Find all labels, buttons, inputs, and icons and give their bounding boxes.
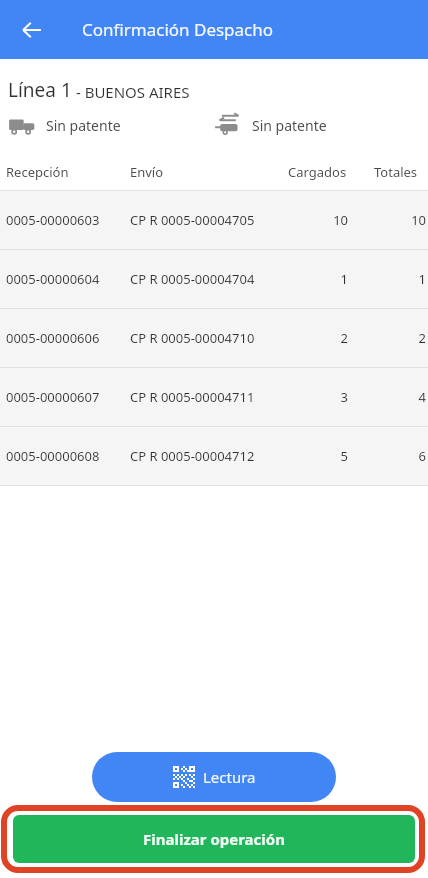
button[interactable]: Lectura: [92, 752, 336, 802]
staticText: Recepción: [6, 163, 69, 181]
button[interactable]: 0005-00000608: [0, 427, 428, 485]
staticText: 2: [288, 329, 348, 347]
staticText: - BUENOS AIRES: [72, 82, 190, 102]
staticText: CP R 0005-00004711: [130, 388, 255, 406]
staticText: Sin patente: [252, 116, 327, 135]
staticText: Envío: [130, 163, 164, 181]
staticText: 1: [374, 270, 426, 288]
staticText: 2: [374, 329, 426, 347]
staticText: 10: [374, 211, 426, 229]
staticText: 1: [288, 270, 348, 288]
staticText: Finalizar operación: [143, 829, 285, 849]
button[interactable]: Sin patente: [8, 111, 214, 139]
button[interactable]: 0005-00000604: [0, 250, 428, 308]
staticText: 0005-00000603: [6, 211, 100, 229]
staticText: CP R 0005-00004710: [130, 329, 255, 347]
button[interactable]: Sin patente: [214, 111, 420, 139]
staticText: Cargados: [288, 163, 348, 181]
staticText: CP R 0005-00004704: [130, 270, 255, 288]
staticText: 4: [374, 388, 426, 406]
staticText: CP R 0005-00004705: [130, 211, 255, 229]
staticText: 10: [288, 211, 348, 229]
staticText: 3: [288, 388, 348, 406]
staticText: Lectura: [203, 767, 256, 787]
staticText: Sin patente: [46, 116, 121, 135]
staticText: CP R 0005-00004712: [130, 447, 255, 465]
staticText: Línea 1: [8, 77, 72, 103]
button[interactable]: 0005-00000606: [0, 309, 428, 367]
staticText: 0005-00000606: [6, 329, 100, 347]
staticText: 0005-00000607: [6, 388, 100, 406]
staticText: 6: [374, 447, 426, 465]
staticText: Confirmación Despacho: [82, 18, 274, 41]
button[interactable]: 0005-00000607: [0, 368, 428, 426]
button[interactable]: Finalizar operación: [13, 815, 415, 863]
staticText: 5: [288, 447, 348, 465]
button[interactable]: Back: [10, 8, 54, 52]
button[interactable]: 0005-00000603: [0, 191, 428, 249]
staticText: 0005-00000604: [6, 270, 100, 288]
staticText: Totales: [374, 163, 428, 181]
staticText: 0005-00000608: [6, 447, 100, 465]
